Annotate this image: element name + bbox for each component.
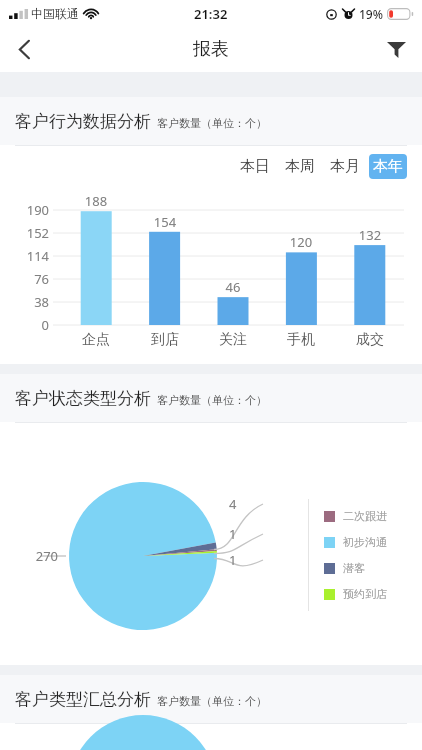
staticText: 预约到店	[343, 587, 387, 601]
staticText: 76	[0, 270, 49, 288]
button[interactable]: 本周	[281, 154, 319, 179]
staticText: 21:32	[194, 5, 228, 23]
staticText: 中国联通	[31, 6, 79, 21]
staticText: 客户数量（单位：个）	[157, 694, 267, 708]
staticText: 114	[0, 247, 49, 265]
staticText: 188	[70, 192, 122, 210]
staticText: 初步沟通	[343, 535, 387, 549]
staticText: 二次跟进	[343, 509, 387, 523]
staticText: 4	[229, 495, 237, 513]
button[interactable]: 本月	[326, 154, 364, 179]
staticText: 客户数量（单位：个）	[157, 393, 267, 407]
staticText: 关注	[207, 331, 259, 349]
staticText: 本周	[285, 157, 315, 176]
staticText: 38	[0, 293, 49, 311]
staticText: 132	[344, 226, 396, 244]
button[interactable]: Filter	[370, 27, 422, 72]
staticText: 19%	[359, 6, 383, 22]
button[interactable]: 本年	[369, 154, 407, 179]
staticText: 本日	[240, 157, 270, 176]
staticText: 46	[207, 278, 259, 296]
staticText: 270	[12, 547, 58, 565]
staticText: 客户类型汇总分析	[15, 689, 151, 710]
staticText: 1	[229, 525, 237, 543]
staticText: 1	[229, 551, 237, 569]
staticText: 企点	[70, 331, 122, 349]
staticText: 本月	[330, 157, 360, 176]
staticText: 120	[275, 233, 327, 251]
staticText: 154	[139, 213, 191, 231]
staticText: 本年	[373, 157, 403, 176]
staticText: 客户行为数据分析	[15, 111, 151, 132]
staticText: 到店	[139, 331, 191, 349]
staticText: 客户状态类型分析	[15, 388, 151, 409]
button[interactable]: Back	[0, 27, 48, 72]
staticText: 报表	[193, 38, 229, 61]
staticText: 手机	[275, 331, 327, 349]
staticText: 190	[0, 201, 49, 219]
staticText: 客户数量（单位：个）	[157, 116, 267, 130]
button[interactable]: 本日	[236, 154, 274, 179]
staticText: 潜客	[343, 561, 365, 575]
staticText: 152	[0, 224, 49, 242]
staticText: 0	[0, 316, 49, 334]
staticText: 成交	[344, 331, 396, 349]
